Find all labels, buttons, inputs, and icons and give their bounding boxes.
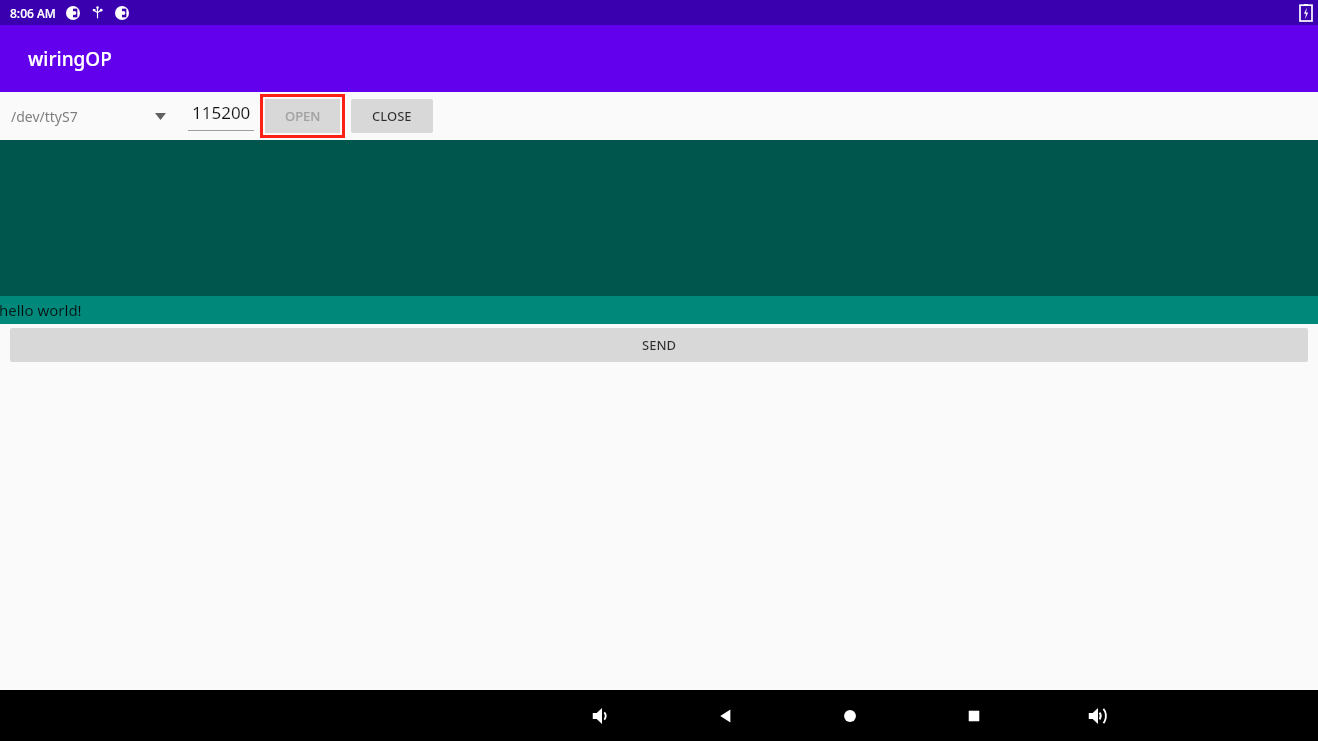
button[interactable]: /dev/ttyS7 xyxy=(0,92,178,140)
button[interactable]: 115200 xyxy=(188,92,254,140)
staticText: /dev/ttyS7 xyxy=(11,107,78,126)
staticText: 115200 xyxy=(192,101,251,124)
staticText: wiringOP xyxy=(28,46,112,72)
button[interactable]: SEND xyxy=(10,328,1308,362)
other: Select serial port xyxy=(155,113,166,120)
button[interactable]: CLOSE xyxy=(351,99,433,133)
button[interactable]: Volume up xyxy=(1067,690,1129,741)
button[interactable]: Volume down xyxy=(571,690,633,741)
staticText: hello world! xyxy=(0,300,82,320)
staticText: SEND xyxy=(642,336,676,354)
button[interactable]: Home xyxy=(819,690,881,741)
staticText: OPEN xyxy=(285,107,321,125)
button[interactable]: Back xyxy=(695,690,757,741)
staticText: CLOSE xyxy=(372,107,412,125)
button[interactable]: OPEN xyxy=(265,99,340,133)
staticText: 8:06 AM xyxy=(10,5,56,21)
button[interactable]: Recents xyxy=(943,690,1005,741)
